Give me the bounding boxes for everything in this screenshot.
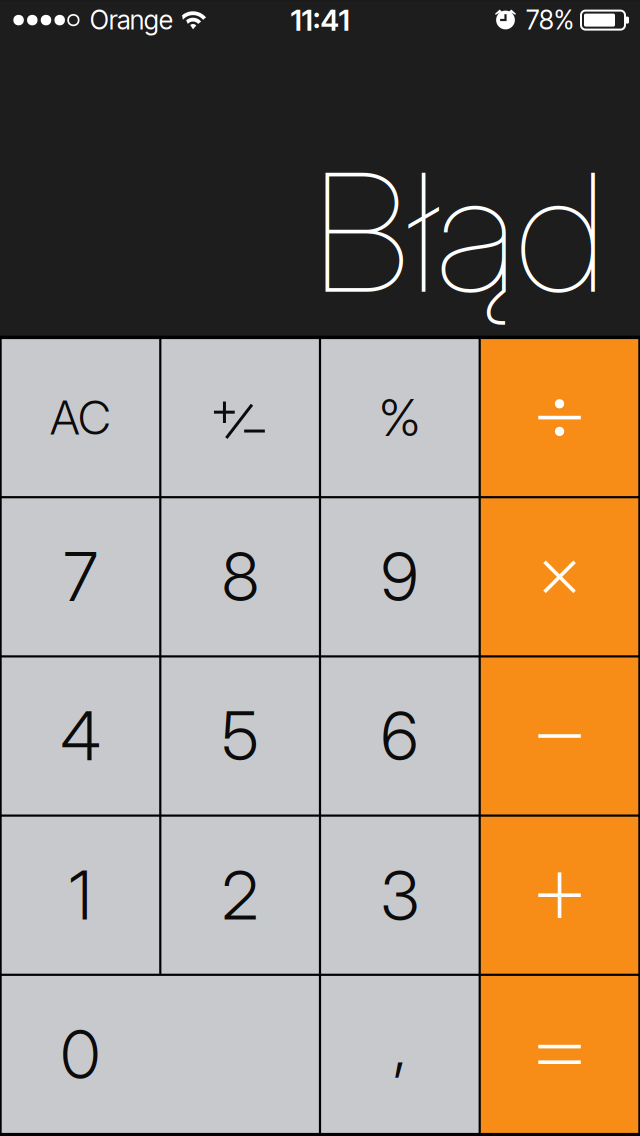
staticText: 11:41 [290, 2, 349, 38]
staticText: 5 [222, 696, 259, 776]
button[interactable]: 3 [321, 817, 479, 974]
button[interactable]: Multiply [481, 498, 638, 655]
staticText: 78% [526, 4, 574, 36]
button[interactable]: 4 [2, 657, 159, 814]
button[interactable]: Divide [481, 339, 638, 496]
staticText: 1 [69, 855, 92, 936]
button[interactable]: Equals [481, 976, 638, 1133]
staticText: 9 [381, 536, 419, 617]
button[interactable]: Percent [321, 339, 479, 496]
staticText: 4 [60, 696, 100, 776]
button[interactable]: 0 [2, 976, 319, 1133]
button[interactable]: 5 [161, 657, 319, 814]
button[interactable]: Minus [481, 657, 638, 814]
staticText: , [393, 1004, 407, 1085]
staticText: 6 [381, 696, 419, 776]
button[interactable]: Plus [481, 817, 638, 974]
staticText: AC [50, 389, 111, 446]
button[interactable]: 6 [321, 657, 479, 814]
staticText: Orange [90, 4, 173, 36]
button[interactable]: 8 [161, 498, 319, 655]
button[interactable]: All Clear [2, 339, 159, 496]
button[interactable]: Decimal separator [321, 976, 479, 1133]
staticText: 7 [63, 536, 97, 617]
staticText: 3 [381, 855, 419, 936]
staticText: Błąd [312, 133, 606, 331]
staticText: 0 [60, 1014, 100, 1095]
button[interactable]: 7 [2, 498, 159, 655]
button[interactable]: Plus Minus [161, 339, 319, 496]
button[interactable]: 9 [321, 498, 479, 655]
staticText: 2 [222, 855, 259, 936]
button[interactable]: 2 [161, 817, 319, 974]
staticText: % [379, 387, 421, 448]
staticText: 8 [222, 536, 259, 617]
button[interactable]: 1 [2, 817, 159, 974]
